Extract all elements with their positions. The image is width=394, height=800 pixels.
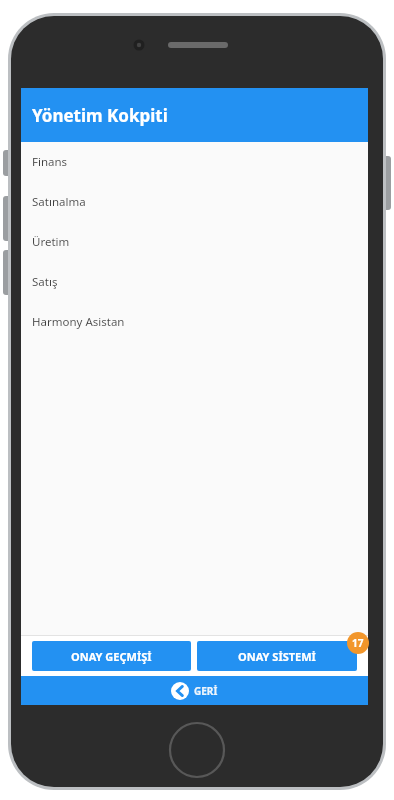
button[interactable]: Geri bbox=[21, 676, 368, 705]
other: Geri bbox=[171, 682, 189, 700]
button[interactable]: Satış bbox=[21, 262, 368, 302]
staticText: ONAY SİSTEMİ bbox=[238, 649, 316, 664]
staticText: GERİ bbox=[194, 684, 218, 698]
staticText: Finans bbox=[32, 154, 68, 170]
button[interactable]: Üretim bbox=[21, 222, 368, 262]
button[interactable]: Satınalma bbox=[21, 182, 368, 222]
other: 17 bekleyen onay bbox=[347, 632, 369, 654]
button[interactable]: Finans bbox=[21, 142, 368, 182]
button[interactable]: Yönetim Kokpiti bbox=[21, 88, 368, 142]
staticText: Yönetim Kokpiti bbox=[32, 104, 168, 127]
staticText: Satış bbox=[32, 274, 58, 290]
staticText: Harmony Asistan bbox=[32, 314, 125, 330]
button[interactable]: Harmony Asistan bbox=[21, 302, 368, 342]
button[interactable]: ONAY SİSTEMİ bbox=[197, 641, 357, 671]
staticText: ONAY GEÇMİŞİ bbox=[71, 649, 152, 664]
staticText: Satınalma bbox=[32, 194, 86, 210]
staticText: Üretim bbox=[32, 234, 70, 250]
staticText: 17 bbox=[352, 636, 364, 650]
button[interactable]: ONAY GEÇMİŞİ bbox=[32, 641, 191, 671]
